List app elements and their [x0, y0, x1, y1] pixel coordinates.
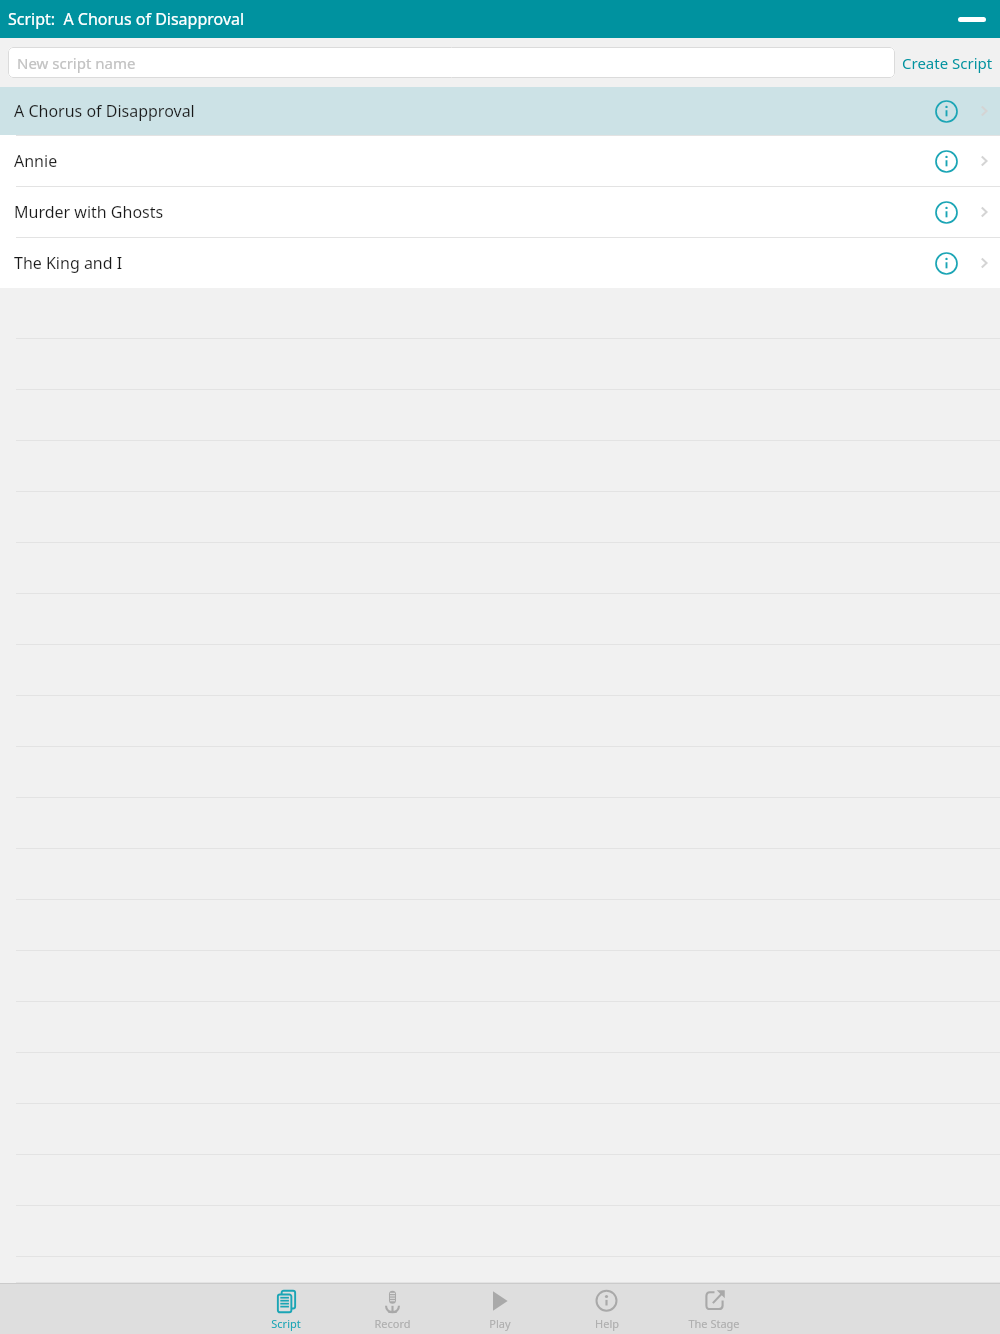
staticText: A Chorus of Disapproval: [14, 100, 924, 122]
staticText: Murder with Ghosts: [14, 201, 924, 223]
button[interactable]: The King and I: [0, 237, 1000, 288]
staticText: Annie: [14, 150, 924, 172]
staticText: The King and I: [14, 252, 924, 274]
button[interactable]: Info: [924, 89, 968, 133]
button[interactable]: Murder with Ghosts: [0, 186, 1000, 237]
button[interactable]: Info: [924, 139, 968, 183]
button[interactable]: Minimize: [952, 7, 992, 32]
button[interactable]: Info: [924, 241, 968, 285]
staticText: New script name: [17, 53, 136, 73]
button[interactable]: Help: [553, 1284, 660, 1334]
button[interactable]: The Stage: [660, 1284, 767, 1334]
button[interactable]: Play: [446, 1284, 553, 1334]
staticText: Script: [271, 1316, 301, 1331]
staticText: Script: A Chorus of Disapproval: [8, 8, 245, 30]
button[interactable]: Info: [924, 190, 968, 234]
button[interactable]: A Chorus of Disapproval: [0, 87, 1000, 135]
button[interactable]: Script: [232, 1284, 339, 1334]
staticText: Help: [595, 1316, 619, 1331]
button[interactable]: Create Script: [895, 38, 1000, 87]
staticText: The Stage: [688, 1316, 740, 1331]
button[interactable]: Record: [339, 1284, 446, 1334]
staticText: Create Script: [902, 53, 993, 73]
button[interactable]: Annie: [0, 135, 1000, 186]
staticText: Record: [374, 1316, 411, 1331]
button[interactable]: New script name: [8, 47, 895, 78]
staticText: Play: [489, 1316, 511, 1331]
